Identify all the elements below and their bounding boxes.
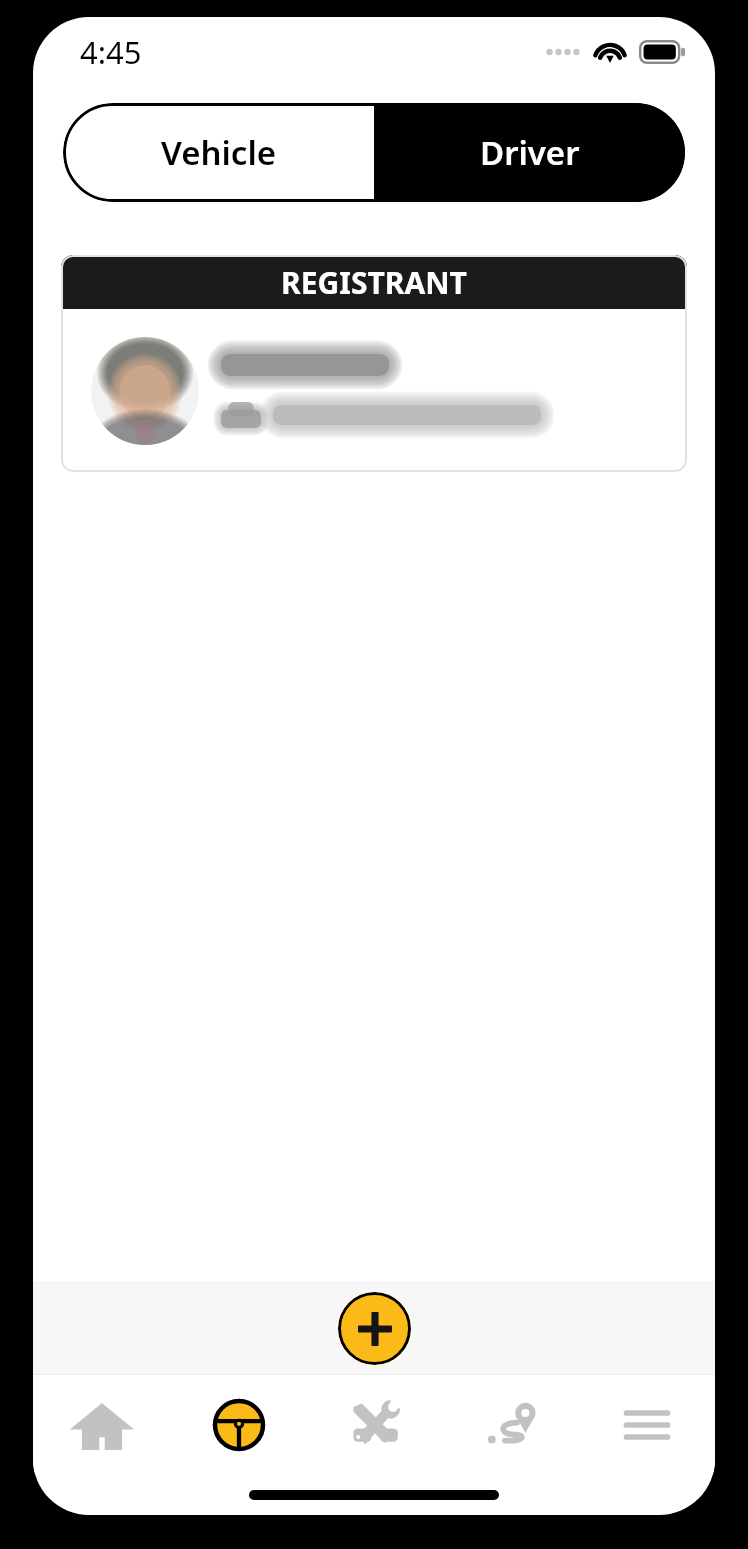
staticText: REGISTRANT	[281, 262, 467, 303]
button[interactable]: Drivers	[170, 1375, 307, 1475]
button[interactable]: Add	[338, 1292, 411, 1365]
button[interactable]: Home	[33, 1375, 170, 1475]
staticText: 4:45	[80, 31, 142, 73]
button[interactable]: Trips	[443, 1375, 579, 1475]
button[interactable]: REGISTRANT	[61, 255, 687, 472]
button[interactable]: Driver	[374, 103, 685, 202]
button[interactable]: Service	[307, 1375, 443, 1475]
button[interactable]: Menu	[579, 1375, 715, 1475]
staticText: Driver	[480, 130, 580, 175]
button[interactable]: Vehicle	[63, 103, 374, 202]
staticText: Vehicle	[161, 130, 277, 175]
